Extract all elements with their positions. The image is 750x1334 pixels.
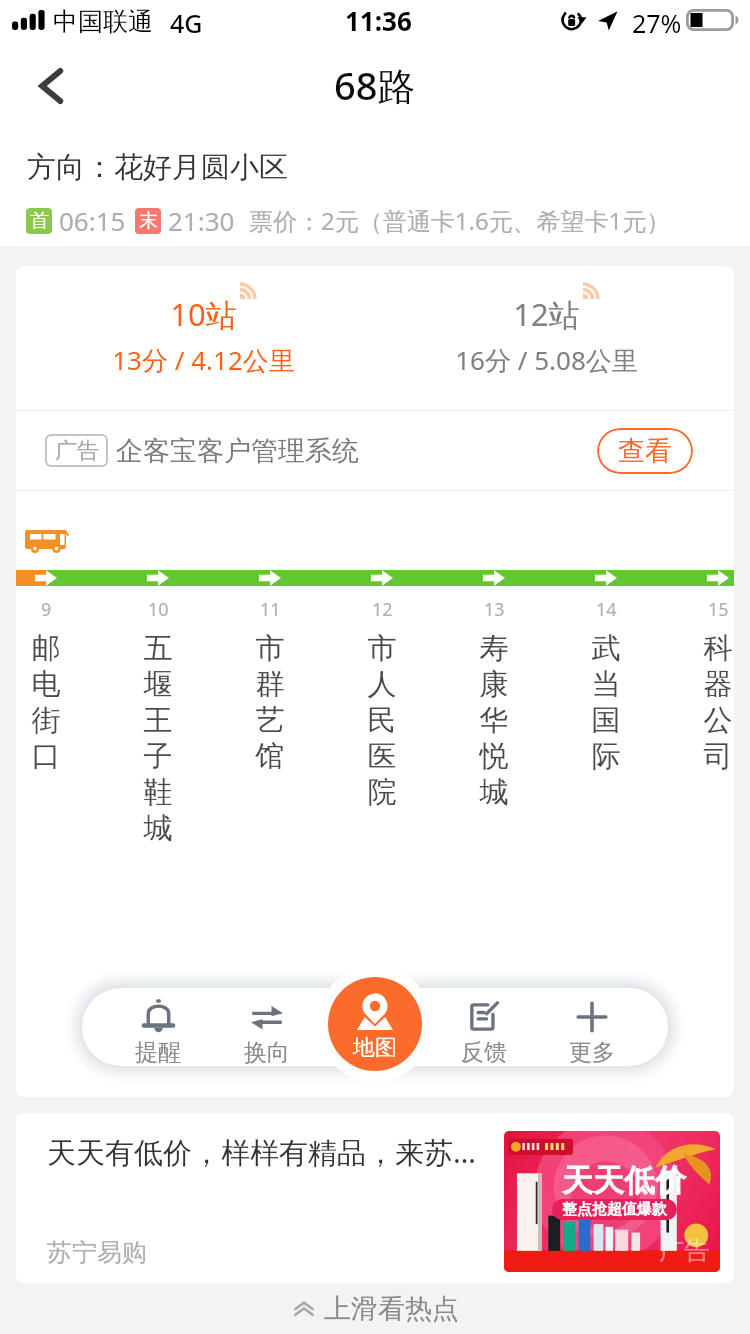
- staticText: 整点抢超值爆款: [562, 1200, 667, 1219]
- staticText: 科器公司: [702, 630, 734, 774]
- button[interactable]: 10: [102, 597, 214, 846]
- staticText: 广告: [55, 437, 99, 465]
- staticText: 企客宝客户管理系统: [116, 434, 359, 468]
- button[interactable]: 11: [214, 597, 326, 774]
- staticText: 27%: [632, 6, 682, 40]
- button[interactable]: 9: [16, 597, 102, 774]
- staticText: 4G: [170, 6, 203, 40]
- staticText: 14: [596, 597, 617, 622]
- staticText: 10: [148, 597, 169, 622]
- staticText: 21:30: [168, 203, 235, 238]
- staticText: 13分 / 4.12公里: [32, 342, 375, 378]
- button[interactable]: 查看: [597, 428, 693, 474]
- staticText: 13: [484, 597, 505, 622]
- staticText: 票价：2元（普通卡1.6元、希望卡1元）: [249, 204, 671, 237]
- staticText: 苏宁易购: [47, 1237, 147, 1268]
- staticText: 16分 / 5.08公里: [375, 342, 718, 378]
- button[interactable]: [32, 266, 375, 410]
- button[interactable]: 15: [662, 597, 734, 774]
- button[interactable]: 换向: [217, 995, 317, 1065]
- staticText: 首: [30, 209, 49, 233]
- button[interactable]: 14: [550, 597, 662, 774]
- button[interactable]: 提醒: [108, 995, 208, 1065]
- staticText: 提醒: [135, 1038, 181, 1065]
- button[interactable]: [375, 266, 718, 410]
- staticText: 上滑看热点: [324, 1292, 459, 1326]
- staticText: 查看: [618, 434, 672, 468]
- staticText: 武当国际: [590, 630, 622, 774]
- button[interactable]: 地图: [328, 977, 422, 1071]
- button[interactable]: 更多: [542, 995, 642, 1065]
- staticText: 广告: [659, 1235, 709, 1266]
- staticText: 中国联通: [53, 6, 153, 37]
- staticText: 天天低价: [562, 1161, 686, 1200]
- staticText: 06:15: [59, 203, 126, 238]
- staticText: 反馈: [461, 1038, 507, 1065]
- staticText: 天天有低价，样样有精品，来苏…: [47, 1132, 476, 1172]
- button[interactable]: 天天有低价，样样有精品，来苏…: [16, 1113, 734, 1283]
- staticText: 更多: [569, 1038, 615, 1065]
- staticText: 12站: [375, 293, 718, 335]
- staticText: 10站: [32, 293, 375, 335]
- button[interactable]: 反馈: [434, 995, 534, 1065]
- staticText: 末: [139, 209, 158, 233]
- button[interactable]: 广告: [16, 411, 734, 490]
- staticText: 寿康华悦城: [478, 630, 510, 810]
- staticText: 68路: [334, 59, 416, 111]
- staticText: 11:36: [345, 3, 412, 38]
- staticText: 五堰王子鞋城: [142, 630, 174, 846]
- staticText: 换向: [244, 1038, 290, 1065]
- button[interactable]: Back: [8, 50, 94, 122]
- staticText: 9: [41, 597, 52, 622]
- staticText: 市人民医院: [366, 630, 398, 810]
- button[interactable]: 13: [438, 597, 550, 810]
- staticText: 11: [260, 597, 281, 622]
- staticText: 邮电街口: [30, 630, 62, 774]
- staticText: 15: [708, 597, 729, 622]
- button[interactable]: 12: [326, 597, 438, 810]
- staticText: 市群艺馆: [254, 630, 286, 774]
- staticText: 地图: [353, 1034, 397, 1062]
- staticText: 12: [372, 597, 393, 622]
- staticText: 方向：花好月圆小区: [27, 149, 288, 186]
